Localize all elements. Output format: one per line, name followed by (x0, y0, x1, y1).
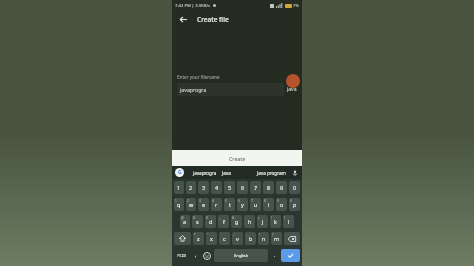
staticText: - (245, 216, 247, 220)
staticText: ?123 (177, 253, 187, 259)
button[interactable]: u (250, 198, 261, 211)
button[interactable]: 5 (224, 181, 235, 194)
staticText: c (223, 235, 226, 242)
staticText: l (288, 218, 290, 225)
button[interactable]: s (192, 215, 203, 228)
button[interactable]: Voice input (291, 169, 299, 177)
button[interactable]: 7 (250, 181, 261, 194)
staticText: ) (284, 216, 285, 220)
button[interactable]: , (191, 249, 200, 262)
button[interactable]: ?123 (174, 249, 189, 262)
button[interactable]: Extension (286, 74, 300, 88)
staticText: n (262, 235, 266, 242)
staticText: 7:42 PM | 3.9KB/s (175, 3, 211, 9)
button[interactable]: . (270, 249, 279, 262)
staticText: G (178, 169, 182, 176)
button[interactable]: p (289, 198, 300, 211)
staticText: j (262, 218, 264, 225)
button[interactable]: t (224, 198, 235, 211)
staticText: r (215, 201, 218, 208)
staticText: + (258, 216, 260, 220)
button[interactable]: 8 (263, 181, 274, 194)
staticText: Java program (257, 170, 286, 176)
button[interactable]: 6 (237, 181, 248, 194)
button[interactable]: 2 (186, 181, 196, 194)
staticText: 2 (187, 199, 189, 203)
staticText: a (183, 218, 187, 225)
staticText: z (197, 235, 200, 242)
button[interactable]: h (244, 215, 255, 228)
staticText: Enter your filename (177, 74, 220, 80)
button[interactable]: a (180, 215, 190, 228)
staticText: d (209, 218, 213, 225)
button[interactable]: l (283, 215, 294, 228)
staticText: 5 (225, 199, 227, 203)
button[interactable]: c (219, 232, 230, 245)
staticText: q (177, 201, 181, 208)
staticText: 0 (293, 184, 297, 191)
staticText: u (254, 201, 258, 208)
staticText: 8 (264, 199, 266, 203)
button[interactable]: o (276, 198, 287, 211)
staticText: . (274, 252, 276, 259)
staticText: " (207, 233, 209, 237)
button[interactable]: 4 (211, 181, 222, 194)
staticText: x (210, 235, 213, 242)
staticText: 0 (290, 199, 292, 203)
staticText: * (194, 233, 196, 237)
button[interactable]: Back (177, 13, 190, 26)
staticText: 4 (212, 199, 214, 203)
staticText: b (249, 235, 253, 242)
button[interactable]: Shift (174, 232, 191, 245)
button[interactable]: 9 (276, 181, 287, 194)
staticText: 5 (228, 184, 232, 191)
button[interactable]: z (193, 232, 204, 245)
button[interactable]: w (186, 198, 196, 211)
staticText: t (229, 201, 231, 208)
button[interactable]: Java pr...mming (222, 170, 255, 176)
button[interactable]: javaprogra (177, 83, 284, 96)
staticText: 7 (254, 184, 258, 191)
button[interactable]: i (263, 198, 274, 211)
staticText: Java pr...mming (222, 170, 255, 176)
staticText: y (241, 201, 244, 208)
button[interactable]: g (231, 215, 242, 228)
button[interactable]: m (271, 232, 282, 245)
button[interactable]: 0 (289, 181, 300, 194)
staticText: English (234, 253, 249, 259)
button[interactable]: v (232, 232, 243, 245)
staticText: 7% (293, 3, 299, 9)
staticText: o (280, 201, 284, 208)
button[interactable]: q (174, 198, 184, 211)
staticText: 8 (267, 184, 271, 191)
button[interactable]: x (206, 232, 217, 245)
button[interactable]: e (198, 198, 209, 211)
button[interactable]: y (237, 198, 248, 211)
button[interactable]: Emoji (202, 249, 212, 262)
button[interactable]: b (245, 232, 256, 245)
button[interactable]: n (258, 232, 269, 245)
button[interactable]: Google (175, 168, 184, 177)
button[interactable]: k (270, 215, 281, 228)
button[interactable]: Backspace (284, 232, 300, 245)
staticText: # (193, 216, 196, 220)
button[interactable]: Create (172, 150, 302, 166)
staticText: javaprogra (193, 170, 217, 176)
button[interactable]: 1 (174, 181, 184, 194)
button[interactable]: Java program (255, 170, 288, 176)
staticText: : (233, 233, 234, 237)
button[interactable]: d (205, 215, 216, 228)
button[interactable]: Enter (281, 249, 300, 262)
staticText: 1 (175, 199, 177, 203)
staticText: & (232, 216, 235, 220)
button[interactable]: javaprogra (188, 170, 222, 176)
button[interactable]: f (218, 215, 229, 228)
button[interactable]: j (257, 215, 268, 228)
staticText: i (268, 201, 270, 208)
staticText: p (293, 201, 297, 208)
staticText: ? (272, 233, 274, 237)
button[interactable]: r (211, 198, 222, 211)
button[interactable]: English (214, 249, 268, 262)
staticText: ( (271, 216, 272, 220)
button[interactable]: 3 (198, 181, 209, 194)
